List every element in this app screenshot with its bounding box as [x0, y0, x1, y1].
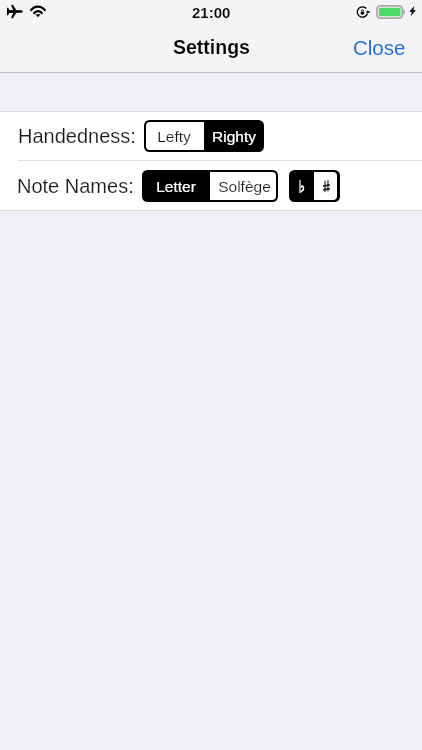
- button[interactable]: Note Names:: [0, 161, 422, 210]
- button[interactable]: Handedness:: [0, 112, 422, 160]
- other: Rotation lock: [357, 6, 371, 18]
- button[interactable]: [314, 170, 339, 202]
- other: Airplane mode: [7, 4, 23, 19]
- staticText: Letter: [156, 178, 196, 195]
- other: Wi-Fi: [29, 5, 47, 17]
- staticText: Solfège: [218, 178, 271, 195]
- other: Battery charging: [376, 5, 406, 19]
- button[interactable]: [289, 170, 314, 202]
- button[interactable]: Lefty: [144, 120, 204, 152]
- staticText: Handedness:: [18, 125, 136, 147]
- staticText: Settings: [173, 36, 250, 58]
- button[interactable]: Righty: [204, 120, 264, 152]
- button[interactable]: Solfège: [210, 170, 278, 202]
- staticText: 21:00: [192, 4, 231, 21]
- button[interactable]: Close: [333, 24, 422, 72]
- staticText: Close: [353, 36, 406, 59]
- staticText: Note Names:: [17, 175, 134, 197]
- staticText: Lefty: [157, 128, 191, 145]
- button[interactable]: Letter: [142, 170, 210, 202]
- staticText: Righty: [212, 128, 256, 145]
